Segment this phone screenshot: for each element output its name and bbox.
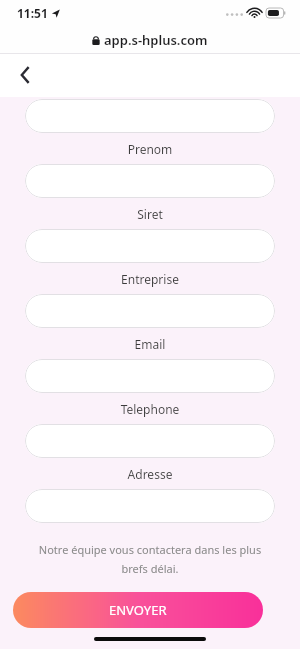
staticText: Telephone — [25, 401, 275, 417]
staticText: 11:51 — [17, 5, 48, 21]
button[interactable] — [25, 229, 275, 263]
staticText: Notre équipe vous contactera dans les pl… — [25, 542, 275, 576]
staticText: Email — [25, 336, 275, 352]
staticText: app.s-hplus.com — [104, 31, 208, 49]
staticText: ENVOYER — [109, 601, 167, 619]
button[interactable]: Back — [8, 58, 42, 92]
button[interactable]: app.s-hplus.com — [0, 26, 300, 53]
staticText: Entreprise — [25, 271, 275, 287]
button[interactable] — [25, 99, 275, 133]
staticText: Prenom — [25, 141, 275, 157]
button[interactable] — [25, 489, 275, 523]
button[interactable]: ENVOYER — [13, 592, 263, 628]
button[interactable] — [25, 294, 275, 328]
button[interactable] — [25, 359, 275, 393]
staticText: Adresse — [25, 466, 275, 482]
button[interactable] — [25, 424, 275, 458]
staticText: Siret — [25, 206, 275, 222]
button[interactable] — [25, 164, 275, 198]
